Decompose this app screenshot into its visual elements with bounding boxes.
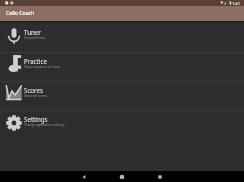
- staticText: Cello Coach: [6, 10, 35, 17]
- staticText: Live pitch view: [24, 36, 46, 40]
- staticText: Practice: [24, 57, 47, 65]
- staticText: Settings: [24, 115, 48, 123]
- staticText: Show old scores: [24, 94, 48, 98]
- button[interactable]: Home: [103, 171, 141, 182]
- button[interactable]: Practice: [0, 53, 244, 81]
- staticText: Scores: [24, 86, 43, 94]
- staticText: Change application settings: [24, 123, 65, 127]
- button[interactable]: Settings: [0, 111, 244, 139]
- staticText: Play a sequence of notes: [24, 65, 60, 69]
- staticText: 1:41: [232, 1, 240, 6]
- button[interactable]: Tuner: [0, 24, 244, 52]
- button[interactable]: Recents: [141, 171, 179, 182]
- button[interactable]: Scores: [0, 82, 244, 110]
- staticText: Tuner: [24, 28, 41, 36]
- button[interactable]: Back: [65, 171, 103, 182]
